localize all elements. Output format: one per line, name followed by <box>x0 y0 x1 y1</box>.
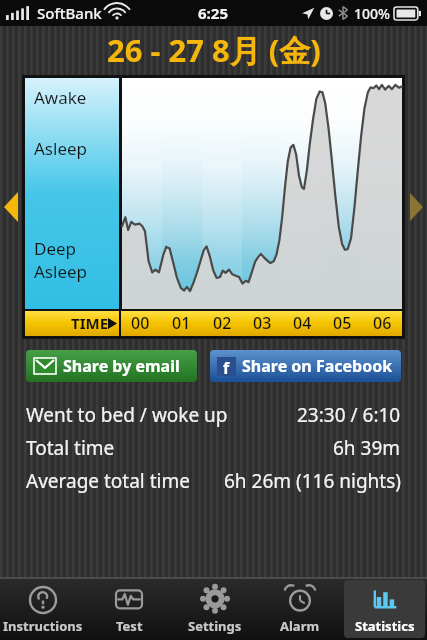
staticText: Share by email <box>63 355 180 377</box>
staticText: 6:25 <box>198 3 228 23</box>
staticText: Awake <box>34 86 87 109</box>
button[interactable]: Awake <box>22 75 405 339</box>
staticText: Instructions <box>3 617 83 635</box>
staticText: Share on Facebook <box>242 355 393 377</box>
staticText: Settings <box>188 617 242 635</box>
staticText: Deep <box>34 237 77 260</box>
button[interactable]: Alarm <box>259 580 340 638</box>
button[interactable]: f <box>210 350 401 382</box>
button[interactable]: Statistics <box>344 580 425 638</box>
staticText: 100% <box>354 4 390 23</box>
staticText: 04 <box>293 312 312 334</box>
staticText: Alarm <box>280 617 320 635</box>
staticText: 6h 39m <box>333 435 401 461</box>
staticText: 6h 26m (116 nights) <box>224 468 401 494</box>
staticText: Asleep <box>34 137 88 160</box>
staticText: 02 <box>213 312 232 334</box>
staticText: Average total time <box>26 468 190 494</box>
staticText: TIME <box>71 313 109 333</box>
button[interactable]: Previous night <box>0 74 22 340</box>
button[interactable]: Next night <box>405 74 427 340</box>
button[interactable]: Instructions <box>2 580 84 638</box>
staticText: 01 <box>172 312 191 334</box>
staticText: 05 <box>333 312 352 334</box>
staticText: Test <box>116 617 143 635</box>
staticText: f <box>223 357 230 376</box>
staticText: 23:30 / 6:10 <box>297 402 401 428</box>
staticText: 06 <box>373 312 392 334</box>
staticText: Statistics <box>355 617 415 635</box>
button[interactable]: Settings <box>174 580 255 638</box>
button[interactable]: Test <box>88 580 170 638</box>
staticText: 00 <box>131 312 150 334</box>
staticText: Went to bed / woke up <box>26 402 228 428</box>
staticText: Asleep <box>34 260 88 283</box>
staticText: 26 - 27 8月 (金) <box>107 29 321 71</box>
button[interactable]: Share by email <box>26 350 197 382</box>
staticText: SoftBank <box>37 3 102 23</box>
staticText: Total time <box>26 435 115 461</box>
staticText: 03 <box>253 312 272 334</box>
